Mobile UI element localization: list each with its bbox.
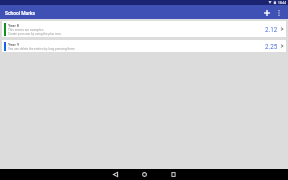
staticText: 2.12 — [265, 26, 278, 33]
staticText: Create your own by using the plus icon. — [8, 32, 62, 36]
staticText: 2.25 — [265, 43, 278, 50]
button[interactable]: Recents — [159, 169, 188, 180]
staticText: You can delete the entries by long press… — [8, 47, 76, 51]
staticText: Year 9 — [8, 42, 19, 47]
button[interactable]: Year 9 — [2, 40, 286, 52]
button[interactable]: More options — [273, 7, 285, 19]
staticText: School Marks — [5, 10, 35, 16]
button[interactable]: Back — [101, 169, 130, 180]
button[interactable]: Home — [130, 169, 159, 180]
staticText: Year 8 — [8, 23, 19, 28]
staticText: This entries are examples. — [8, 28, 45, 32]
button[interactable]: Year 8 — [2, 21, 286, 37]
button[interactable]: Add — [260, 6, 273, 19]
staticText: 18:44 — [278, 1, 286, 5]
